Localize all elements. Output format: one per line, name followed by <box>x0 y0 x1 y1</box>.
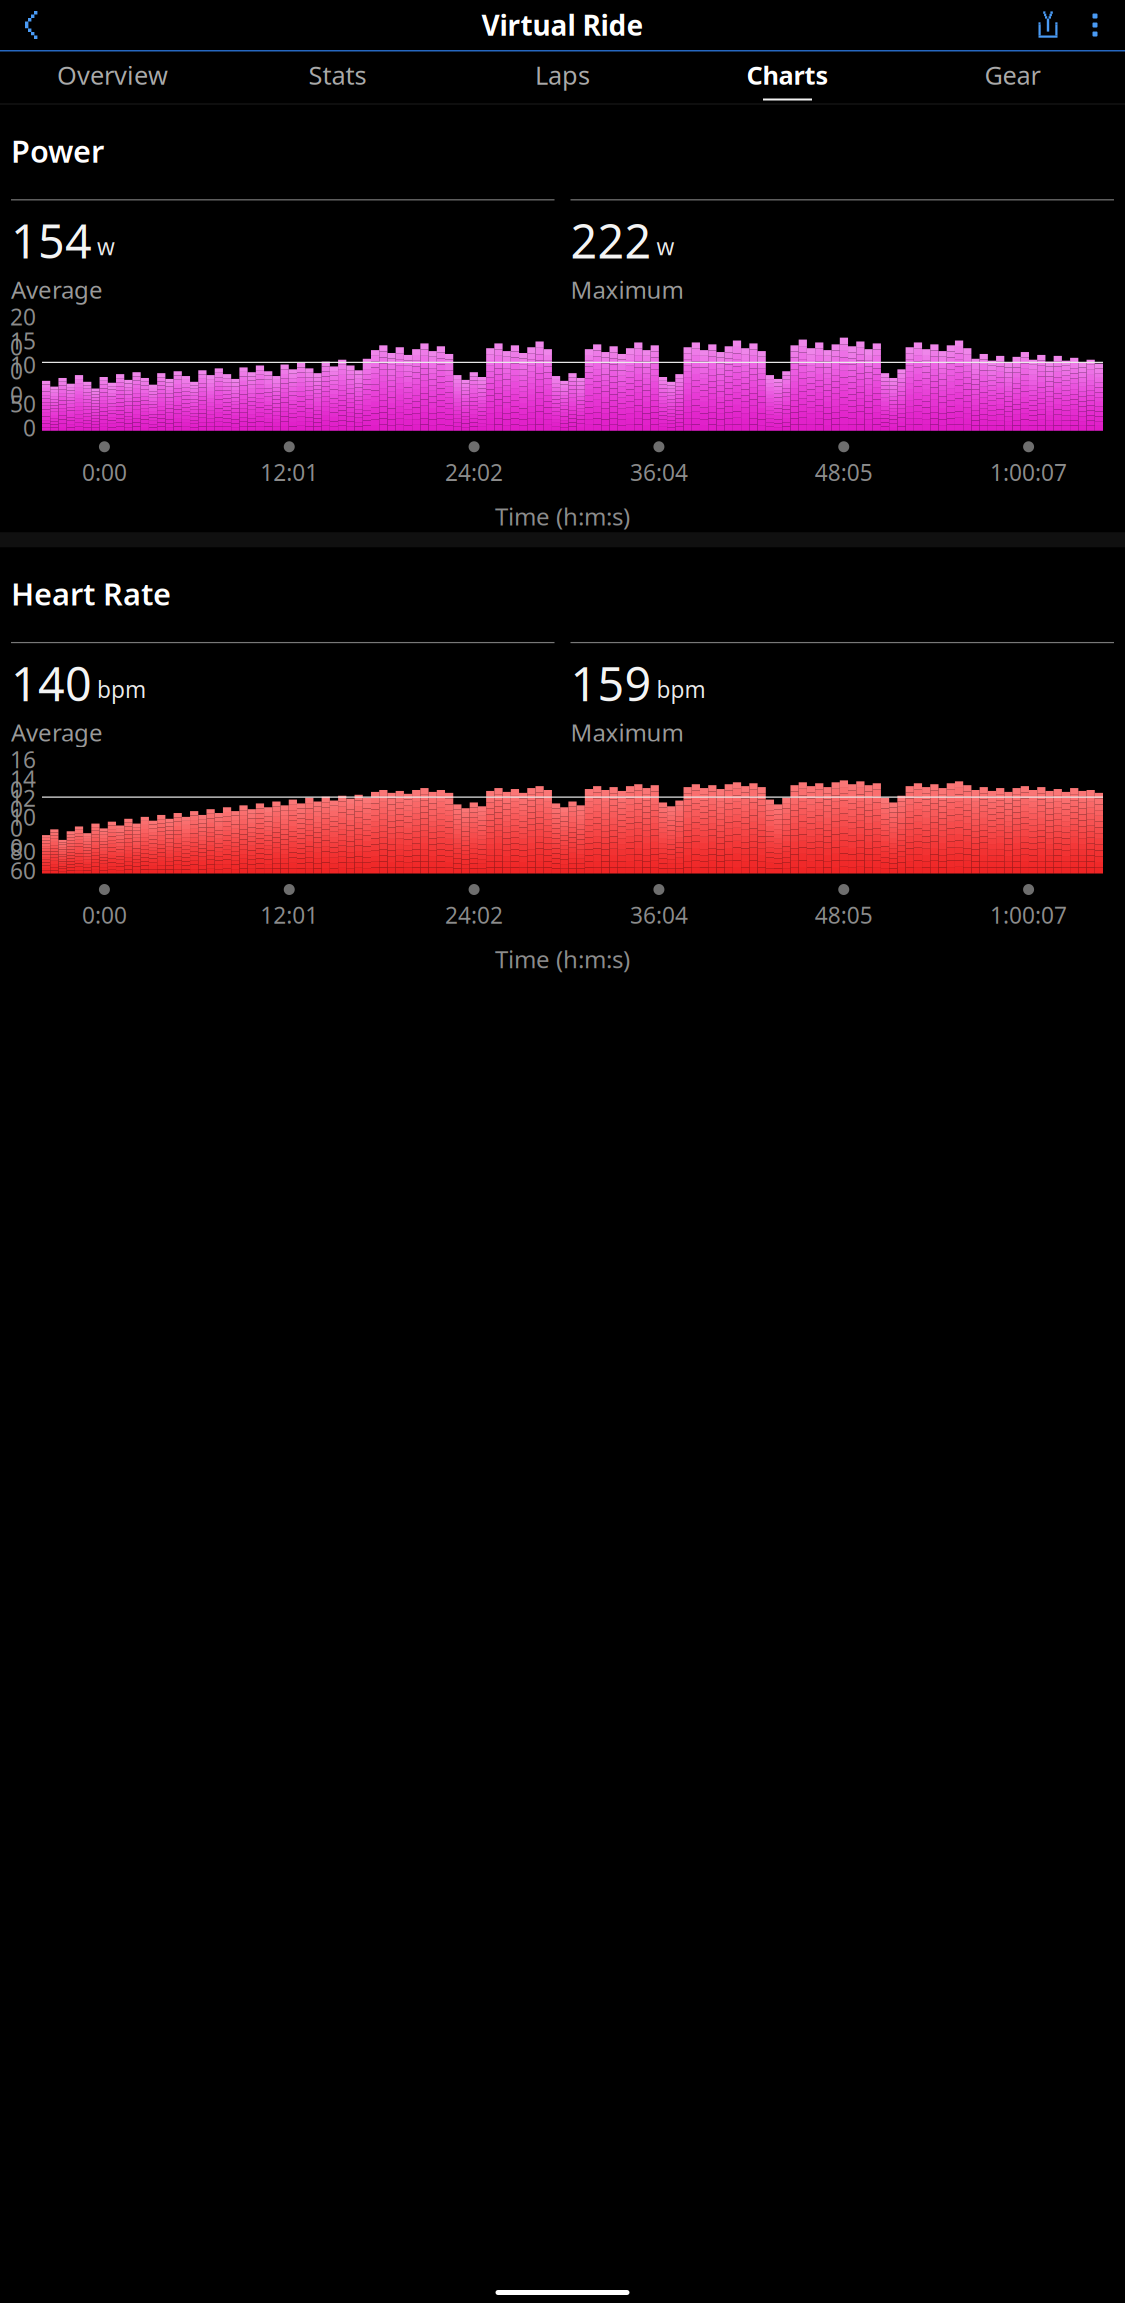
staticText: 0:00 <box>82 457 127 487</box>
staticText: Gear <box>984 58 1040 92</box>
staticText: 159 <box>570 652 651 714</box>
staticText: w <box>97 231 115 261</box>
button[interactable]: Stats <box>225 51 450 103</box>
staticText: w <box>656 231 674 261</box>
staticText: 50 <box>10 389 36 419</box>
button[interactable]: Laps <box>450 51 675 103</box>
button[interactable]: Back <box>4 0 58 50</box>
staticText: 24:02 <box>445 457 503 487</box>
staticText: Maximum <box>570 716 683 748</box>
staticText: Virtual Ride <box>481 6 643 44</box>
staticText: Heart Rate <box>11 573 171 614</box>
staticText: 120 <box>10 783 36 843</box>
staticText: 0:00 <box>82 900 127 930</box>
staticText: 0 <box>23 413 36 443</box>
button[interactable]: More options <box>1072 0 1118 50</box>
button[interactable]: Overview <box>0 51 225 103</box>
staticText: Charts <box>746 58 828 92</box>
staticText: 140 <box>11 652 92 714</box>
staticText: 1:00:07 <box>990 900 1067 930</box>
staticText: bpm <box>97 674 146 704</box>
staticText: Average <box>11 716 103 748</box>
staticText: Time (h:m:s) <box>495 500 630 532</box>
staticText: Time (h:m:s) <box>495 943 630 975</box>
staticText: 100 <box>10 802 36 862</box>
staticText: 36:04 <box>630 900 688 930</box>
staticText: 80 <box>10 836 36 866</box>
staticText: Maximum <box>570 273 683 305</box>
staticText: 48:05 <box>815 900 873 930</box>
staticText: 222 <box>570 209 651 271</box>
staticText: 1:00:07 <box>990 457 1067 487</box>
staticText: Power <box>11 130 104 171</box>
staticText: Laps <box>535 58 590 92</box>
staticText: 150 <box>10 326 36 386</box>
button[interactable]: Share <box>1024 0 1072 50</box>
staticText: Overview <box>57 58 168 92</box>
staticText: bpm <box>656 674 705 704</box>
staticText: 140 <box>10 764 36 824</box>
staticText: 12:01 <box>260 900 318 930</box>
staticText: 12:01 <box>260 457 318 487</box>
staticText: 36:04 <box>630 457 688 487</box>
staticText: Average <box>11 273 103 305</box>
staticText: Stats <box>308 58 366 92</box>
staticText: 24:02 <box>445 900 503 930</box>
button[interactable]: Gear <box>900 51 1125 103</box>
button[interactable]: Charts <box>675 51 900 103</box>
staticText: 100 <box>10 350 36 410</box>
staticText: 160 <box>10 744 36 805</box>
staticText: 200 <box>10 302 36 362</box>
staticText: 60 <box>10 855 36 886</box>
staticText: 48:05 <box>815 457 873 487</box>
staticText: 154 <box>11 209 92 271</box>
